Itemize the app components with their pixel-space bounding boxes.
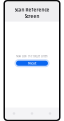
staticText: Now scan the target screen [16,55,48,58]
button[interactable]: Settings [41,107,59,119]
staticText: Next [28,61,36,65]
button[interactable]: Next [14,59,49,67]
staticText: Scan Reference [14,7,49,13]
button[interactable]: Scan [23,107,41,119]
staticText: Screen [24,14,39,19]
button[interactable]: Home [5,107,23,119]
